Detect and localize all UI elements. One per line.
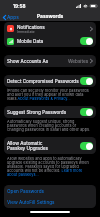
button[interactable]: Open Passwords bbox=[4, 185, 96, 197]
button[interactable]: Notifications bbox=[4, 22, 96, 35]
button[interactable]: Allow websites and apps to automatically… bbox=[7, 156, 93, 177]
staticText: Show Accounts As bbox=[7, 58, 68, 64]
staticText: Apps bbox=[7, 14, 19, 20]
staticText: Notifications bbox=[17, 24, 45, 30]
staticText: Open Passwords bbox=[7, 188, 45, 194]
staticText: 19:58 bbox=[13, 3, 26, 9]
staticText: Suggest Strong Passwords bbox=[7, 109, 80, 115]
button[interactable]: Toggle setting bbox=[80, 37, 93, 45]
button[interactable]: View AutoFill Settings bbox=[4, 196, 96, 208]
staticText: Allow Automatic Passkey Upgrades bbox=[7, 140, 80, 151]
button[interactable]: Apps bbox=[2, 13, 20, 21]
staticText: Mobile Data bbox=[17, 38, 80, 44]
staticText: Passwords bbox=[37, 13, 64, 19]
button[interactable]: iPhone can securely monitor your passwor… bbox=[7, 88, 93, 101]
staticText: Detect Compromised Passwords bbox=[7, 78, 80, 84]
staticText: Websites bbox=[68, 58, 89, 64]
staticText: View AutoFill Settings bbox=[7, 199, 55, 205]
button[interactable]: Toggle setting bbox=[80, 77, 93, 85]
button[interactable]: Toggle setting bbox=[80, 142, 93, 150]
button[interactable]: Show Accounts As bbox=[4, 55, 96, 67]
staticText: Immediate bbox=[17, 30, 35, 34]
button[interactable]: Automatically suggest unique, strong pas… bbox=[7, 119, 93, 132]
button[interactable]: Toggle setting bbox=[80, 108, 93, 116]
